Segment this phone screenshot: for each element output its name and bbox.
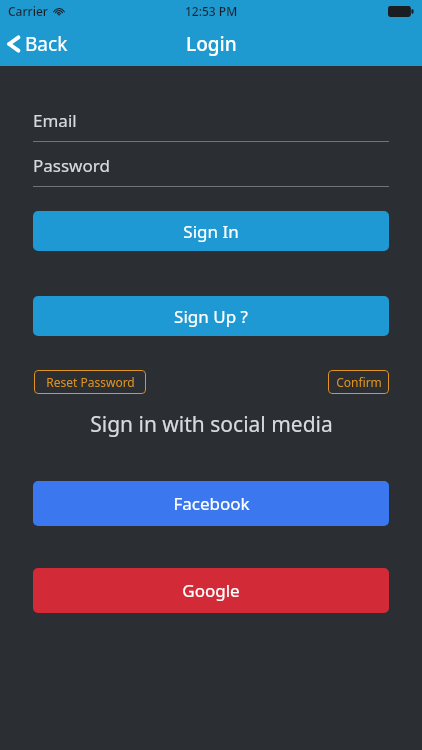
staticText: Reset Password (46, 374, 135, 390)
staticText: Facebook (173, 492, 250, 515)
staticText: Login (186, 31, 237, 57)
staticText: Confirm (336, 374, 382, 390)
button[interactable]: Facebook (33, 481, 389, 526)
button[interactable]: Sign In (33, 211, 389, 251)
staticText: Google (182, 579, 240, 602)
staticText: Sign Up ? (174, 305, 248, 328)
button[interactable]: Back (0, 27, 78, 61)
staticText: Password (33, 154, 110, 177)
staticText: Email (33, 109, 77, 132)
button[interactable]: Confirm (328, 370, 389, 394)
button[interactable]: Password (0, 0, 422, 23)
staticText: Sign In (183, 220, 239, 243)
staticText: Back (25, 31, 68, 57)
staticText: 12:53 PM (185, 3, 238, 19)
button[interactable]: Sign Up ? (33, 296, 389, 336)
button[interactable]: Email (0, 0, 422, 23)
staticText: Carrier (8, 3, 48, 19)
button[interactable]: Reset Password (34, 370, 146, 394)
button[interactable]: Google (33, 568, 389, 613)
staticText: Sign in with social media (90, 410, 333, 439)
